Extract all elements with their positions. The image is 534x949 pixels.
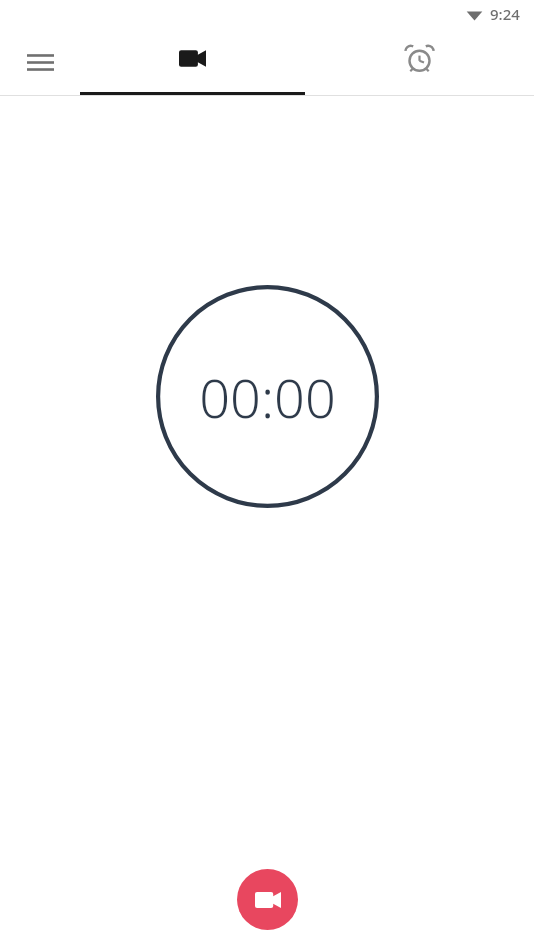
button[interactable]: Open navigation menu bbox=[0, 28, 80, 96]
button[interactable]: Start recording bbox=[237, 869, 298, 930]
button[interactable]: Scheduled recordings tab bbox=[305, 28, 534, 96]
button[interactable]: Recorder tab bbox=[80, 28, 305, 96]
staticText: 9:24 bbox=[490, 4, 520, 24]
staticText: 00:00 bbox=[199, 360, 336, 434]
